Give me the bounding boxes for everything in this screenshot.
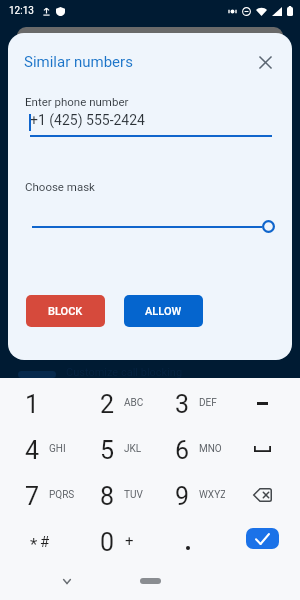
staticText: 6 xyxy=(175,436,190,465)
staticText: WXYZ xyxy=(199,489,225,501)
staticText: TUV xyxy=(124,489,143,501)
button[interactable]: 4 xyxy=(0,426,75,472)
staticText: 2 xyxy=(100,390,115,419)
staticText: 12:13 xyxy=(9,5,34,17)
button[interactable]: Enter xyxy=(225,518,300,564)
staticText: DEF xyxy=(199,397,217,409)
button[interactable]: Backspace xyxy=(225,472,300,518)
staticText: Enter phone number xyxy=(25,95,129,108)
button[interactable]: 6 xyxy=(150,426,225,472)
staticText: * xyxy=(30,534,38,554)
staticText: +1 (425) 555-2424 xyxy=(30,112,145,128)
button[interactable]: 7 xyxy=(0,472,75,518)
button[interactable] xyxy=(150,518,225,564)
button[interactable]: ALLOW xyxy=(124,295,203,327)
button[interactable]: 1 xyxy=(0,380,75,426)
staticText: JKL xyxy=(124,443,142,455)
button[interactable]: 8 xyxy=(75,472,150,518)
staticText: Choose mask xyxy=(25,180,95,193)
button[interactable]: 9 xyxy=(150,472,225,518)
staticText: 3 xyxy=(175,390,190,419)
staticText: 8 xyxy=(100,482,115,511)
staticText: BLOCK xyxy=(48,305,83,318)
button[interactable]: 0 xyxy=(75,518,150,564)
button[interactable]: BLOCK xyxy=(26,295,105,327)
other: Backspace xyxy=(253,488,272,502)
button[interactable] xyxy=(225,380,300,426)
button[interactable]: Hide keyboard xyxy=(55,569,79,593)
button[interactable]: 2 xyxy=(75,380,150,426)
staticText: 4 xyxy=(25,436,40,465)
staticText: ABC xyxy=(124,397,144,409)
staticText: # xyxy=(40,533,50,551)
staticText: 7 xyxy=(25,482,40,511)
button[interactable]: 5 xyxy=(75,426,150,472)
staticText: GHI xyxy=(49,443,66,455)
button[interactable]: * xyxy=(0,518,75,564)
staticText: 0 xyxy=(100,528,115,557)
button[interactable]: Close xyxy=(245,42,285,82)
staticText: Similar numbers xyxy=(24,53,133,71)
staticText: PQRS xyxy=(49,489,75,501)
staticText: 1 xyxy=(25,390,40,419)
staticText: Customize call blocking xyxy=(66,366,183,379)
staticText: + xyxy=(125,532,134,550)
button[interactable]: Enter xyxy=(246,528,279,549)
button[interactable]: 3 xyxy=(150,380,225,426)
staticText: 5 xyxy=(100,436,115,465)
button[interactable] xyxy=(225,426,300,472)
staticText: MNO xyxy=(199,443,222,455)
staticText: ALLOW xyxy=(145,305,182,318)
staticText: 9 xyxy=(175,482,190,511)
